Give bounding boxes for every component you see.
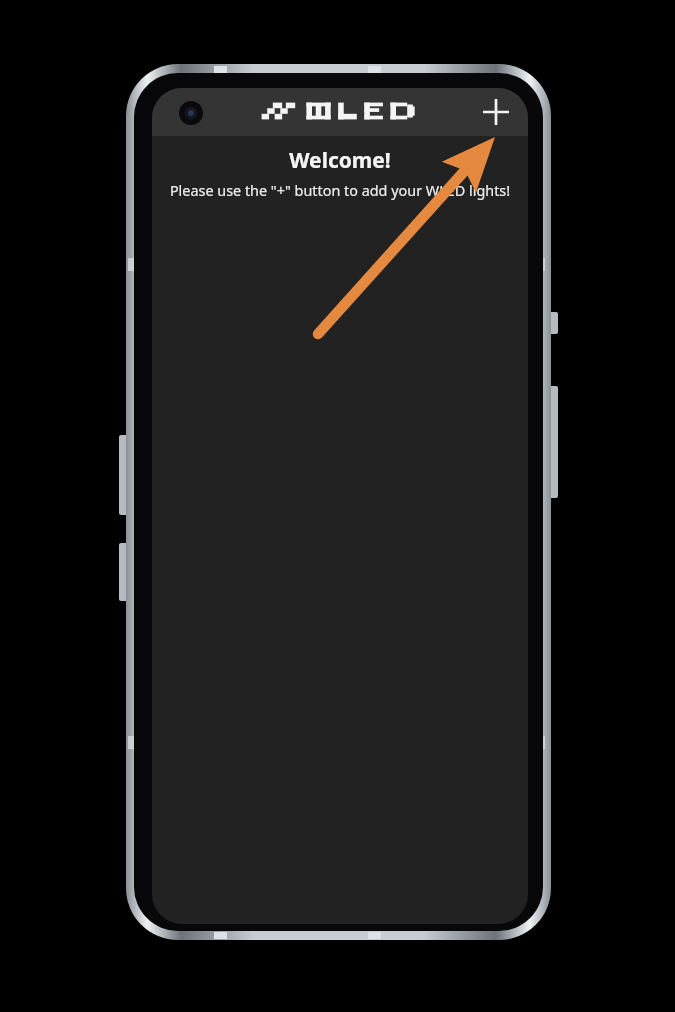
staticText: Welcome!: [152, 146, 528, 174]
button[interactable]: Add WLED light: [473, 89, 519, 135]
staticText: Please use the "+" button to add your WL…: [152, 181, 528, 205]
